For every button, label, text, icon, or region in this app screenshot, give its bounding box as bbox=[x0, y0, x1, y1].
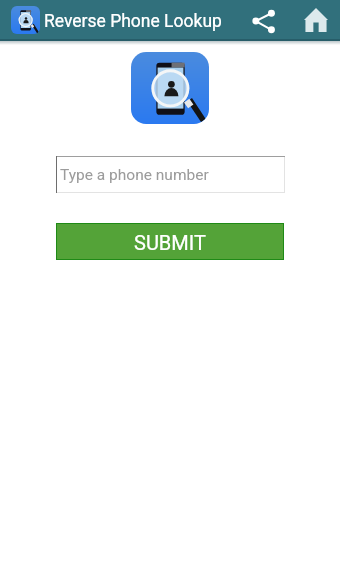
staticText: Reverse Phone Lookup bbox=[44, 11, 222, 32]
button[interactable]: Share bbox=[244, 1, 284, 39]
staticText: SUBMIT bbox=[134, 231, 206, 254]
button[interactable]: Type a phone number bbox=[56, 156, 285, 193]
button[interactable]: Home bbox=[296, 1, 336, 39]
button[interactable]: SUBMIT bbox=[56, 223, 284, 260]
staticText: Type a phone number bbox=[60, 166, 209, 184]
